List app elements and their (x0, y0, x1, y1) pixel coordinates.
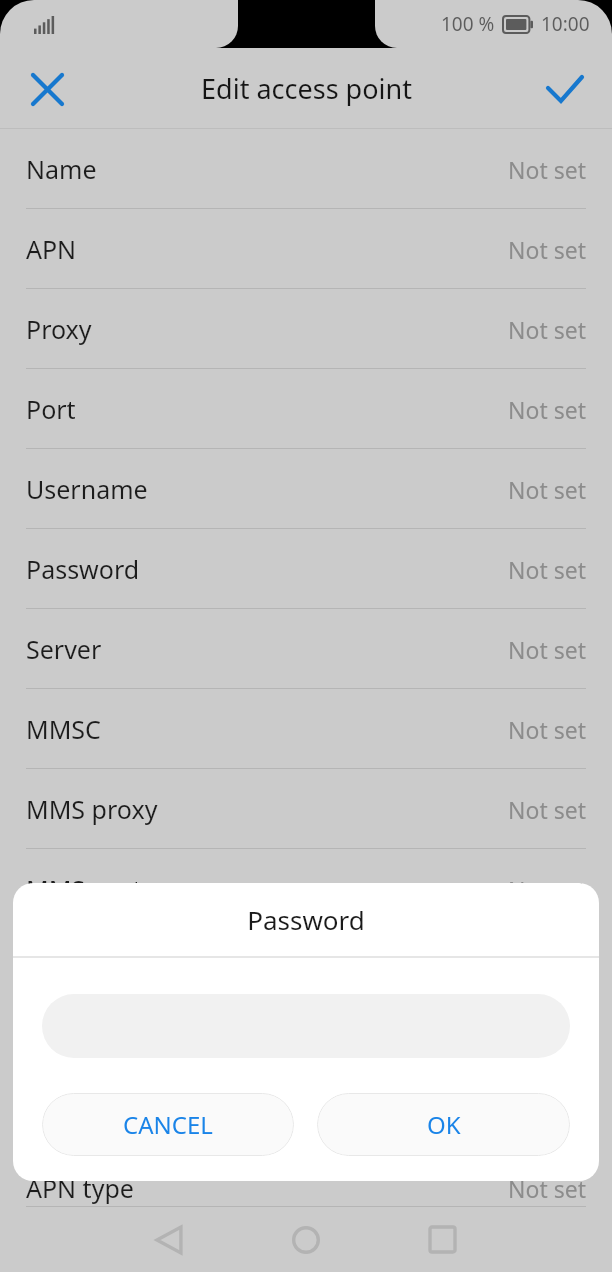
staticText: OK (427, 1108, 461, 1141)
button[interactable]: Port (0, 369, 612, 449)
button[interactable]: MMS proxy (0, 769, 612, 849)
staticText: Not set (508, 474, 586, 505)
staticText: Not set (508, 554, 586, 585)
button[interactable]: APN type (0, 1169, 612, 1207)
staticText: Server (26, 632, 102, 666)
staticText: MCC (26, 952, 80, 986)
staticText: APN (26, 232, 77, 266)
staticText: Not set (508, 714, 586, 745)
staticText: MMS port (26, 872, 142, 906)
staticText: Password (247, 902, 365, 937)
staticText: Proxy (26, 312, 92, 346)
staticText: Edit access point (201, 70, 412, 107)
button[interactable]: Username (0, 449, 612, 529)
button[interactable]: Proxy (0, 289, 612, 369)
staticText: Not set (508, 954, 586, 985)
staticText: Port (26, 392, 76, 426)
staticText: Password (26, 552, 140, 586)
staticText: Not set (508, 154, 586, 185)
staticText: Not set (508, 1034, 586, 1065)
button[interactable]: MNC (0, 1009, 612, 1089)
staticText: Not set (508, 394, 586, 425)
staticText: Name (26, 152, 97, 186)
staticText: CANCEL (123, 1108, 213, 1141)
button[interactable]: Save (532, 56, 598, 122)
staticText: MMSC (26, 712, 101, 746)
button[interactable]: CANCEL (42, 1093, 294, 1156)
button[interactable]: OK (317, 1093, 570, 1156)
button[interactable]: Server (0, 609, 612, 689)
staticText: Not set (508, 1173, 586, 1204)
button[interactable]: Name (0, 129, 612, 209)
button[interactable]: Authentication type (0, 1089, 612, 1169)
staticText: Not set (508, 874, 586, 905)
button[interactable]: Back (136, 1207, 204, 1272)
button[interactable]: APN (0, 209, 612, 289)
staticText: 10:00 (541, 11, 590, 37)
staticText: MMS proxy (26, 792, 158, 826)
staticText: 100 % (441, 11, 495, 37)
button[interactable]: MMS port (0, 849, 612, 929)
button[interactable]: Recents (408, 1207, 476, 1272)
staticText: Not set (508, 634, 586, 665)
staticText: Not set (508, 234, 586, 265)
button[interactable]: Password (0, 529, 612, 609)
button[interactable]: MCC (0, 929, 612, 1009)
staticText: Not set (508, 794, 586, 825)
staticText: Not set (508, 314, 586, 345)
staticText: MNC (26, 1032, 84, 1066)
staticText: APN type (26, 1171, 134, 1205)
button[interactable]: MMSC (0, 689, 612, 769)
button[interactable]: Cancel (14, 56, 80, 122)
staticText: Username (26, 472, 148, 506)
staticText: Authentication type (26, 1112, 257, 1146)
button[interactable]: Home (272, 1207, 340, 1272)
